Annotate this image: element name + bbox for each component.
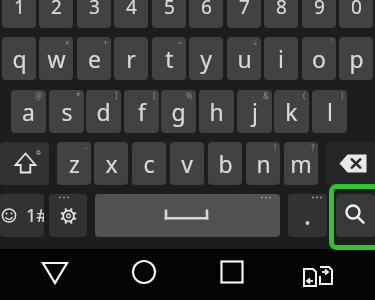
staticText: p (349, 43, 364, 74)
button[interactable]: l (312, 90, 347, 133)
staticText: ~ (178, 37, 183, 48)
staticText: 8 (276, 0, 287, 20)
button[interactable] (336, 194, 375, 237)
staticText: s (61, 96, 73, 127)
staticText: u (237, 43, 252, 74)
staticText: z (69, 148, 80, 179)
button[interactable]: 0 (339, 0, 373, 28)
button[interactable]: 1 (2, 0, 36, 28)
button[interactable]: n (246, 142, 280, 185)
staticText: 1# (26, 203, 44, 228)
staticText: w (47, 43, 66, 74)
staticText: 9 (314, 0, 325, 20)
button[interactable]: a (11, 90, 46, 133)
button[interactable]: 3 (77, 0, 111, 28)
button[interactable]: j (237, 90, 272, 133)
staticText: e (88, 43, 101, 74)
button[interactable]: f (124, 90, 159, 133)
button[interactable]: z (57, 142, 91, 185)
staticText: r (126, 43, 136, 74)
button[interactable]: k (274, 90, 309, 133)
staticText: q (12, 43, 27, 74)
button[interactable] (300, 255, 340, 291)
button[interactable]: i (264, 37, 298, 80)
staticText: ] (115, 90, 118, 101)
button[interactable]: m (284, 142, 318, 185)
button[interactable]: x (94, 142, 128, 185)
staticText: + (103, 37, 108, 48)
staticText: g (171, 96, 186, 127)
button[interactable] (288, 194, 327, 237)
staticText: 2 (51, 0, 62, 20)
staticText: 0 (351, 0, 362, 20)
button[interactable] (212, 255, 252, 291)
button[interactable]: 1# (0, 194, 44, 237)
staticText: ( (303, 90, 306, 101)
staticText: v (181, 148, 193, 179)
button[interactable]: g (161, 90, 196, 133)
button[interactable]: p (339, 37, 373, 80)
staticText: 3 (89, 0, 100, 20)
button[interactable]: 7 (227, 0, 261, 28)
button[interactable]: c (132, 142, 166, 185)
button[interactable]: w (39, 37, 73, 80)
button[interactable] (95, 194, 280, 237)
staticText: k (285, 96, 298, 127)
staticText: - (85, 142, 88, 153)
staticText: ÷ (253, 37, 258, 48)
staticText: h (209, 96, 224, 127)
staticText: ? (311, 142, 315, 153)
button[interactable]: e (77, 37, 111, 80)
staticText: n (256, 148, 271, 179)
staticText: & (263, 90, 269, 101)
staticText: b (218, 148, 233, 179)
button[interactable] (326, 142, 375, 185)
button[interactable] (35, 255, 75, 291)
staticText: y (200, 43, 212, 74)
button[interactable]: s (49, 90, 84, 133)
button[interactable]: o (302, 37, 336, 80)
button[interactable]: h (199, 90, 234, 133)
button[interactable]: b (208, 142, 242, 185)
staticText: [ (153, 90, 156, 101)
button[interactable]: 5 (152, 0, 186, 28)
staticText: d (96, 96, 111, 127)
button[interactable]: r (114, 37, 148, 80)
button[interactable]: v (170, 142, 204, 185)
button[interactable]: q (2, 37, 36, 80)
button[interactable] (49, 194, 87, 237)
staticText: × (65, 37, 70, 48)
staticText: ! (274, 142, 277, 153)
staticText: t (165, 43, 174, 74)
staticText: l (327, 96, 333, 127)
button[interactable]: 8 (264, 0, 298, 28)
staticText: o (312, 43, 326, 74)
button[interactable]: t (152, 37, 186, 80)
staticText: i (278, 43, 284, 74)
staticText: 4 (126, 0, 137, 20)
staticText: 5 (164, 0, 175, 20)
staticText: 6 (201, 0, 212, 20)
staticText: ' (331, 37, 333, 48)
button[interactable]: 9 (302, 0, 336, 28)
staticText: x (105, 148, 118, 179)
staticText: ) (341, 90, 344, 101)
staticText: c (143, 148, 155, 179)
staticText: a (22, 96, 35, 127)
staticText: % (186, 90, 193, 101)
staticText: f (138, 96, 146, 127)
staticText: 1 (14, 0, 25, 20)
staticText: m (290, 148, 312, 179)
staticText: j (252, 96, 258, 127)
button[interactable]: u (227, 37, 261, 80)
button[interactable]: 2 (39, 0, 73, 28)
button[interactable]: 4 (114, 0, 148, 28)
button[interactable]: d (86, 90, 121, 133)
button[interactable]: y (189, 37, 223, 80)
staticText: 7 (239, 0, 250, 20)
button[interactable]: 6 (189, 0, 223, 28)
staticText: * (76, 90, 81, 101)
staticText: @ (35, 90, 43, 101)
button[interactable] (0, 142, 49, 185)
button[interactable] (124, 255, 164, 291)
